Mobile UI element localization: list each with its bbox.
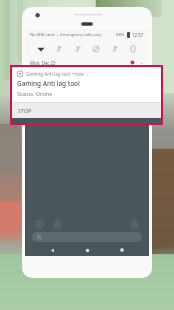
staticText: ⌄ (140, 60, 144, 65)
staticText: ⌄ (86, 72, 90, 77)
staticText: Gaming Anti lag tool • now (26, 71, 84, 77)
button[interactable]: STOP (12, 103, 161, 118)
staticText: Mon, Dec 23 (30, 60, 56, 66)
button[interactable]: Quick setting 5 (126, 42, 140, 56)
button[interactable]: Quick setting 1 (52, 42, 66, 56)
staticText: Gaming Anti lag tool (17, 79, 80, 88)
button[interactable]: Recent apps (114, 244, 130, 256)
button[interactable]: Quick setting 3 (89, 42, 103, 56)
staticText: STOP (18, 107, 32, 114)
button[interactable]: Quick setting 2 (71, 42, 85, 56)
button[interactable]: App shortcut (53, 220, 62, 229)
staticText: 68% (116, 32, 125, 38)
staticText: 12:57 (132, 32, 144, 38)
staticText: Status: Online (17, 90, 53, 97)
button[interactable]: App shortcut (35, 220, 44, 229)
button[interactable]: Quick setting 0 (34, 42, 48, 56)
button[interactable]: App shortcut (130, 220, 139, 229)
staticText: G (37, 233, 42, 241)
button[interactable]: Back (44, 244, 60, 256)
button[interactable]: Google search (32, 232, 142, 242)
button[interactable]: Home (79, 244, 95, 256)
button[interactable]: Quick setting 4 (108, 42, 122, 56)
staticText: No SIM card — Emergency calls only (30, 32, 102, 38)
